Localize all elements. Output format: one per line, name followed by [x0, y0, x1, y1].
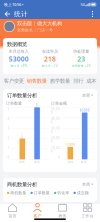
staticText: 订单金额: [51, 101, 67, 106]
staticText: 客户变更: [4, 78, 24, 84]
staticText: 数据概览: [7, 41, 27, 48]
staticText: 3: [7, 127, 9, 130]
staticText: 12000: [65, 143, 75, 146]
staticText: 0: [7, 156, 9, 159]
button[interactable]: 本周: [81, 181, 94, 188]
button[interactable]: 更多: [87, 9, 98, 19]
staticText: 教务: [58, 213, 66, 218]
button[interactable]: 教学数量: [49, 76, 71, 86]
staticText: ▾: [22, 3, 23, 6]
staticText: 45000: [80, 109, 90, 112]
staticText: 客户: [33, 213, 41, 218]
button[interactable]: 首页: [0, 202, 25, 220]
staticText: 老师姓名｜门店一号: [17, 28, 53, 33]
staticText: 10,000: [51, 146, 60, 153]
staticText: 本周: [82, 93, 90, 98]
staticText: 排行: [73, 78, 83, 84]
button[interactable]: 本周: [81, 92, 94, 99]
staticText: 双击版｜做大大机构: [17, 20, 62, 27]
staticText: 5: [7, 107, 9, 111]
button[interactable]: 销售数量: [26, 76, 48, 86]
staticText: 2: [7, 136, 9, 140]
staticText: 教务: [34, 160, 40, 164]
button[interactable]: 教务: [50, 202, 75, 220]
staticText: 54: [81, 2, 85, 7]
staticText: 成本: [86, 78, 96, 84]
button[interactable]: 排行: [72, 76, 84, 86]
staticText: 4: [7, 117, 9, 120]
staticText: 教学数量: [50, 78, 70, 84]
staticText: 商机数量分析: [7, 181, 37, 188]
staticText: 本周新增 +20: [72, 64, 91, 67]
staticText: 订单数量分析: [7, 92, 37, 99]
button[interactable]: 客户: [25, 202, 50, 220]
staticText: 商机数量: [10, 190, 26, 195]
staticText: 20,000: [51, 136, 60, 143]
button[interactable]: 返回: [2, 9, 13, 19]
staticText: 订单数量: [34, 190, 50, 195]
staticText: 教务: [81, 160, 87, 164]
staticText: 较上月 +8%: [11, 64, 27, 67]
staticText: 218: [44, 55, 56, 63]
staticText: 1: [7, 146, 9, 150]
staticText: 在读学员: [42, 49, 58, 54]
staticText: 销售: [19, 160, 25, 164]
staticText: 首页: [8, 213, 16, 218]
staticText: 转化率: [57, 190, 69, 195]
staticText: 统计: [14, 10, 28, 18]
staticText: 较上月 +12: [42, 64, 58, 67]
staticText: 工作台: [81, 213, 93, 218]
button[interactable]: 统计: [13, 9, 29, 19]
staticText: 30,000: [51, 127, 60, 134]
button[interactable]: 成本: [85, 76, 97, 86]
staticText: 晚上10:56: [4, 2, 21, 7]
staticText: 待处理量: [73, 49, 89, 54]
staticText: 5: [36, 103, 38, 107]
staticText: 本月总收入: [9, 49, 29, 54]
staticText: 销售: [68, 160, 74, 164]
staticText: 2: [21, 135, 23, 138]
button[interactable]: 工作台: [75, 202, 100, 220]
staticText: 成交额: [77, 190, 89, 195]
staticText: 53000: [9, 55, 29, 63]
staticText: 50,000: [51, 107, 60, 114]
staticText: 0: [58, 156, 60, 159]
staticText: 40,000: [51, 117, 60, 124]
staticText: 订单数量: [6, 101, 22, 106]
staticText: 本周: [82, 182, 90, 187]
staticText: 23: [77, 55, 85, 63]
staticText: 销售数量: [27, 78, 47, 84]
button[interactable]: 客户变更: [2, 76, 25, 86]
